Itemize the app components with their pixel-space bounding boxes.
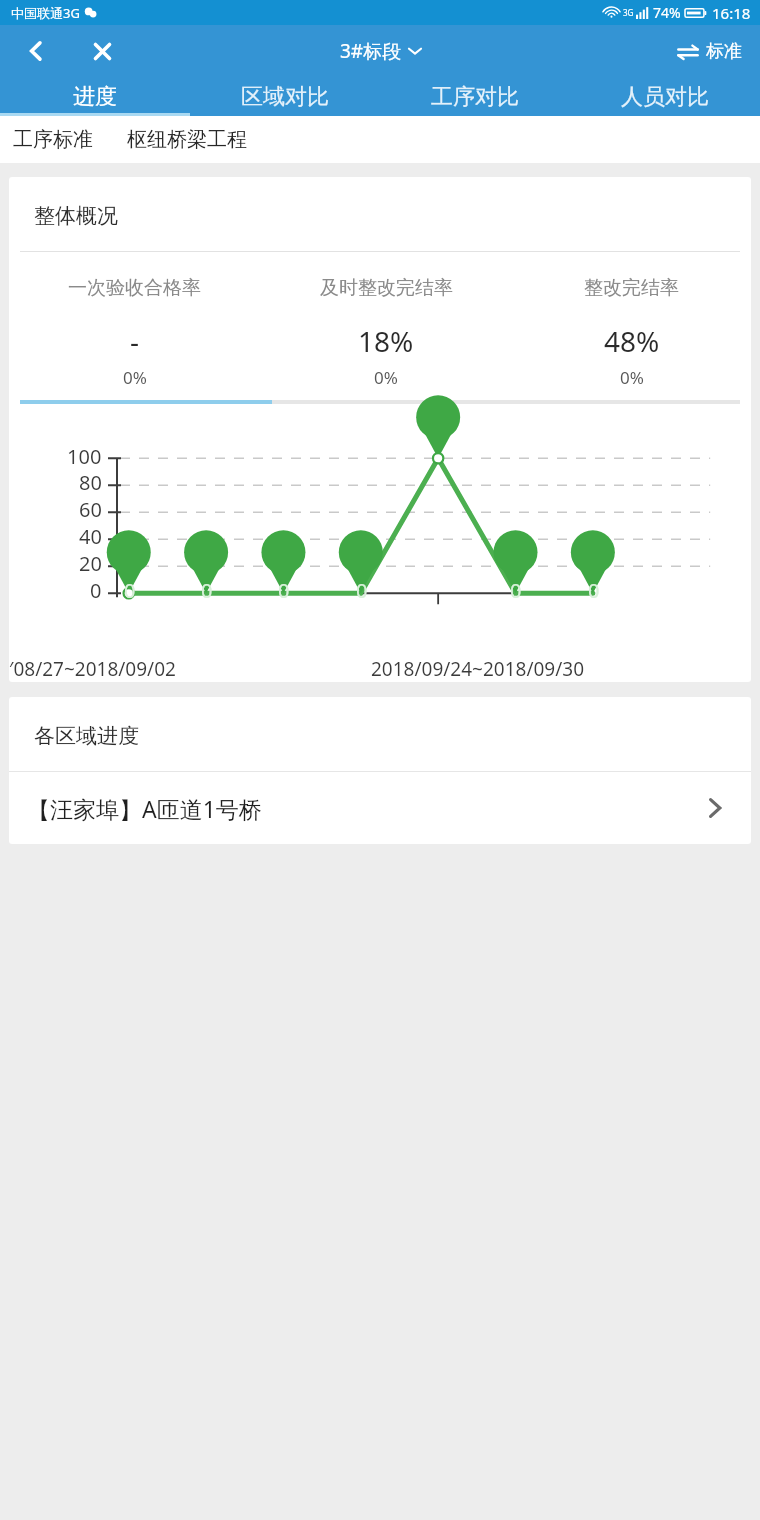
staticText: 0 (278, 577, 290, 604)
staticText: 74% (653, 3, 681, 22)
staticText: 100 (425, 462, 460, 469)
staticText: 标准 (706, 40, 742, 63)
staticText: - (130, 322, 140, 360)
button[interactable]: 人员对比 (570, 77, 760, 116)
button[interactable]: 区域对比 (190, 77, 380, 116)
button[interactable]: 整改完结率 (512, 276, 751, 389)
staticText: 0 (356, 577, 368, 604)
staticText: ′08/27~2018/09/02 (9, 656, 176, 682)
staticText: 工序对比 (431, 83, 519, 111)
staticText: 0 (124, 577, 136, 604)
staticText: 人员对比 (621, 83, 709, 111)
button[interactable]: 【汪家埠】A匝道1号桥 (9, 772, 751, 844)
staticText: 48% (604, 322, 660, 360)
button[interactable]: 枢纽桥梁工程 (121, 119, 253, 160)
staticText: 区域对比 (241, 83, 329, 111)
staticText: 【汪家埠】A匝道1号桥 (27, 793, 262, 824)
staticText: 16:18 (712, 3, 751, 23)
staticText: 40 (79, 523, 102, 550)
button[interactable]: Close (80, 29, 124, 73)
button[interactable]: 进度 (0, 77, 190, 116)
staticText: 整改完结率 (584, 276, 679, 300)
staticText: 0% (620, 366, 644, 389)
staticText: 0% (374, 366, 398, 389)
button[interactable]: 标准 (673, 32, 746, 71)
staticText: 0 (201, 577, 213, 604)
button[interactable]: Back (14, 29, 58, 73)
button[interactable]: 工序对比 (380, 77, 570, 116)
staticText: 60 (79, 496, 102, 523)
staticText: 及时整改完结率 (320, 276, 453, 300)
staticText: 20 (79, 550, 102, 577)
staticText: 18% (358, 322, 414, 360)
staticText: 3G (623, 7, 634, 18)
staticText: 0 (588, 577, 600, 604)
staticText: 各区域进度 (34, 723, 139, 749)
button[interactable]: 工序标准 (0, 119, 99, 160)
staticText: 工序标准 (13, 127, 93, 152)
staticText: 枢纽桥梁工程 (127, 127, 247, 152)
staticText: 中国联通3G (11, 4, 80, 22)
button[interactable]: 一次验收合格率 (9, 276, 260, 389)
staticText: 0 (90, 577, 102, 604)
staticText: 100 (67, 443, 102, 469)
staticText: 80 (79, 469, 102, 496)
staticText: 3#标段 (340, 38, 402, 64)
staticText: 0 (510, 577, 522, 604)
staticText: 整体概况 (34, 203, 118, 229)
button[interactable]: 3#标段 (340, 38, 421, 64)
staticText: 0% (123, 366, 147, 389)
button[interactable]: 及时整改完结率 (260, 276, 512, 389)
staticText: 2018/09/24~2018/09/30 (371, 656, 585, 682)
staticText: 进度 (73, 83, 117, 111)
staticText: 一次验收合格率 (68, 276, 201, 300)
